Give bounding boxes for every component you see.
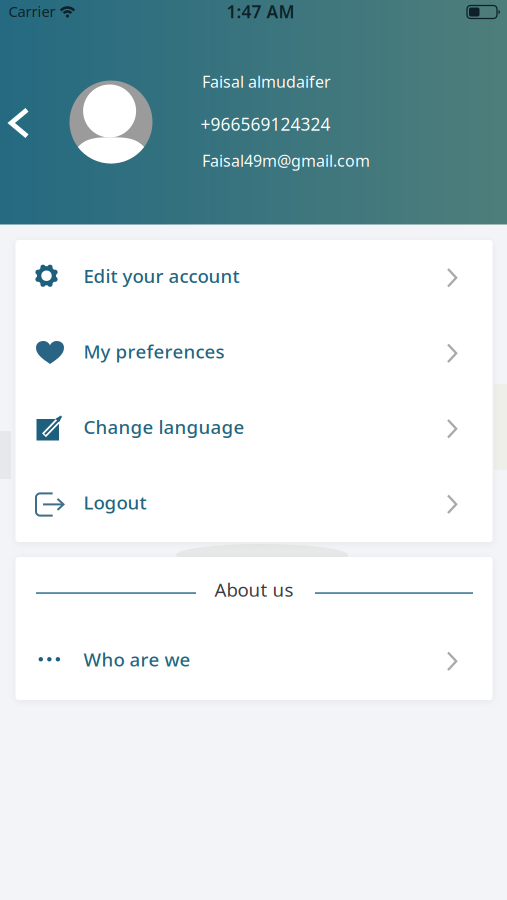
button[interactable]: Change language xyxy=(15,391,492,466)
staticText: Faisal49m@gmail.com xyxy=(202,150,370,171)
button[interactable]: Logout xyxy=(15,466,492,542)
button[interactable]: My preferences xyxy=(15,315,492,391)
staticText: Logout xyxy=(83,490,146,515)
button[interactable]: Who are we xyxy=(15,623,492,699)
staticText: My preferences xyxy=(83,339,224,364)
staticText: About us xyxy=(214,577,293,602)
staticText: +966569124324 xyxy=(200,112,330,135)
button[interactable]: Edit your account xyxy=(15,240,492,315)
staticText: 1:47 AM xyxy=(226,0,294,23)
staticText: Faisal almudaifer xyxy=(202,71,331,92)
staticText: Edit your account xyxy=(83,263,239,288)
staticText: Who are we xyxy=(83,647,190,672)
staticText: Change language xyxy=(83,414,244,439)
button[interactable]: Back xyxy=(8,108,30,138)
staticText: Carrier xyxy=(8,1,55,21)
